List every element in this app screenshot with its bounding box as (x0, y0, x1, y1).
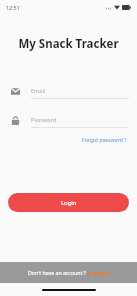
staticText: 12:51 (6, 4, 20, 11)
button[interactable]: Forgot password ? (80, 134, 129, 145)
other: Password (10, 115, 21, 126)
button[interactable]: Login (8, 193, 129, 212)
staticText: My Snack Tracker (18, 36, 119, 52)
staticText: Email (31, 87, 46, 95)
other: Email (10, 86, 21, 97)
button[interactable]: Don't have an account ? (0, 262, 137, 283)
staticText: Login (61, 199, 77, 207)
staticText: Don't have an account ? (28, 269, 88, 276)
button[interactable]: Email (10, 84, 129, 99)
staticText: Password (31, 116, 57, 124)
staticText: Forgot password ? (82, 136, 127, 143)
button[interactable]: Password (10, 113, 129, 128)
staticText: Register (88, 269, 110, 276)
